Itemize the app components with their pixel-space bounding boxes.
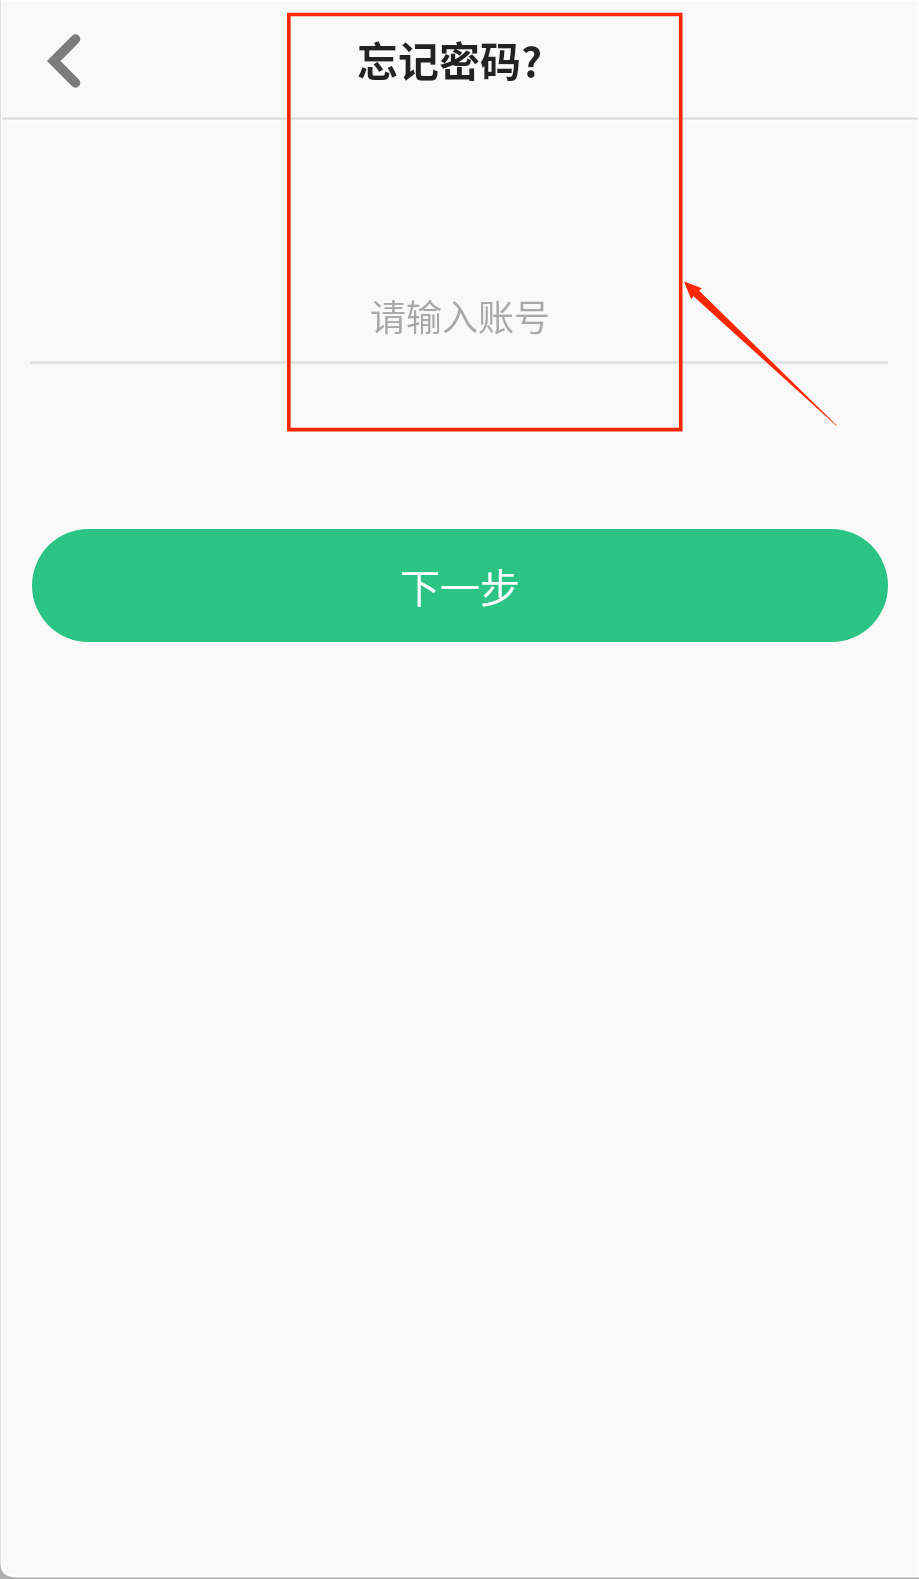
staticText: 请输入账号 <box>370 289 551 341</box>
button[interactable]: Back <box>4 2 122 116</box>
staticText: 忘记密码? <box>357 29 543 88</box>
button[interactable]: 下一步 <box>32 529 888 642</box>
staticText: 下一步 <box>400 557 520 615</box>
